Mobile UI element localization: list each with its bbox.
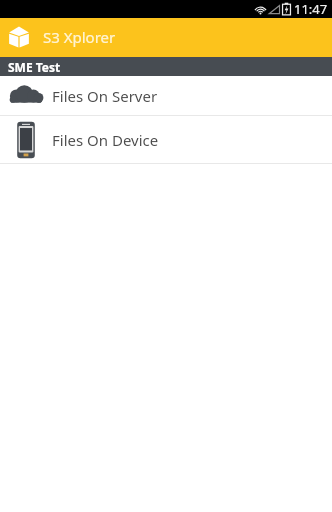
- other: S3 Xplorer app icon: [6, 24, 32, 50]
- staticText: Files On Device: [52, 130, 159, 150]
- staticText: SME Test: [8, 59, 61, 75]
- staticText: 11:47: [294, 0, 328, 18]
- staticText: Files On Server: [52, 86, 158, 106]
- button[interactable]: Files On Server: [0, 76, 332, 115]
- button[interactable]: Files On Device: [0, 116, 332, 163]
- staticText: S3 Xplorer: [43, 27, 116, 47]
